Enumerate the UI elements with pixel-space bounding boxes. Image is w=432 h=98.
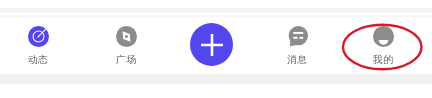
- button[interactable]: 我的: [353, 26, 413, 66]
- staticText: 消息: [287, 53, 307, 66]
- button[interactable]: Add: [190, 23, 233, 66]
- button[interactable]: 动态: [8, 26, 68, 66]
- staticText: 动态: [28, 53, 48, 66]
- button[interactable]: 广场: [96, 26, 156, 66]
- staticText: 广场: [116, 53, 136, 66]
- button[interactable]: 消息: [267, 26, 327, 66]
- staticText: 我的: [373, 53, 393, 66]
